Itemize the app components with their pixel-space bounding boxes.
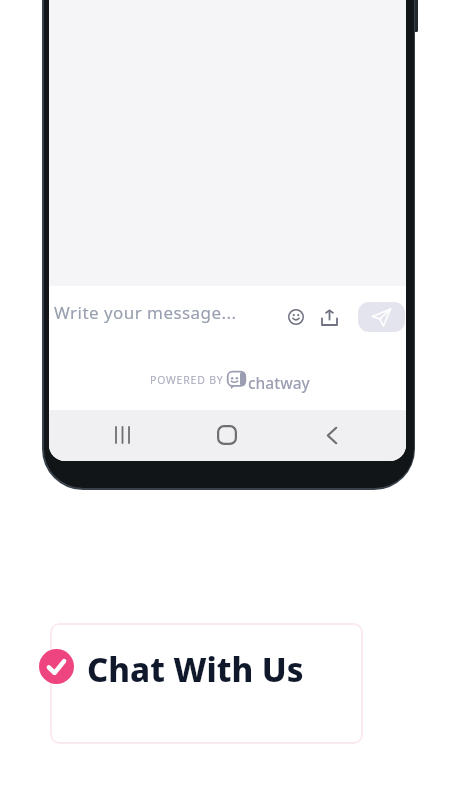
button[interactable]: Chat With Us [50,623,363,744]
button[interactable] [282,303,309,330]
button[interactable] [39,649,74,684]
button[interactable] [106,419,138,451]
staticText: POWERED BY [150,373,224,387]
staticText: Write your message... [54,301,237,324]
button[interactable] [358,302,405,332]
button[interactable] [316,419,348,451]
staticText: chatway [248,372,310,393]
button[interactable]: Write your message... [49,292,279,340]
button[interactable] [316,304,342,330]
staticText: Chat With Us [87,647,304,692]
button[interactable] [211,419,243,451]
